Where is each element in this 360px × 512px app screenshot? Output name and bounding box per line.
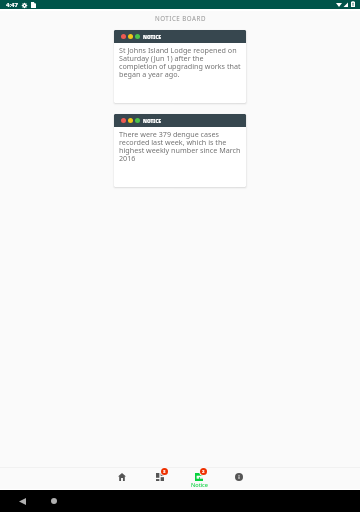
staticText: NOTICE BOARD [155, 14, 206, 22]
button[interactable]: Home [49, 496, 59, 506]
staticText: 2 [202, 469, 205, 475]
staticText: 4:47 [6, 1, 18, 9]
staticText: St Johns Island Lodge reopened on Saturd… [119, 45, 242, 79]
button[interactable]: Home [102, 468, 141, 489]
staticText: NOTICE [143, 34, 162, 40]
button[interactable]: Dashboard [141, 468, 180, 489]
button[interactable]: Notice [180, 468, 219, 489]
staticText: Notice [191, 481, 208, 489]
button[interactable]: NOTICE [114, 114, 246, 187]
staticText: 3 [163, 469, 166, 475]
button[interactable]: Info [219, 468, 258, 489]
staticText: There were 379 dengue cases recorded las… [119, 129, 242, 163]
button[interactable]: NOTICE [114, 30, 246, 103]
staticText: NOTICE [143, 118, 162, 124]
button[interactable]: Back [17, 496, 27, 506]
